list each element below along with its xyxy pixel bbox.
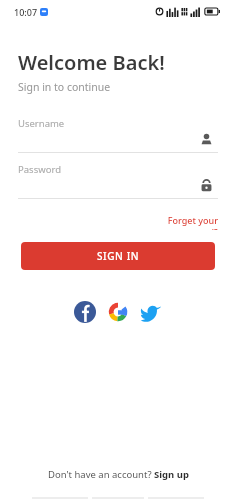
staticText: Welcome Back!: [18, 49, 165, 76]
button[interactable]: Password: [18, 163, 218, 199]
button[interactable]: Sign in with Google: [105, 299, 131, 325]
staticText: Forget your password?: [120, 214, 218, 230]
staticText: Sign up: [154, 468, 189, 481]
button[interactable]: Don't have an account?: [0, 466, 236, 482]
staticText: SIGN IN: [97, 249, 140, 263]
staticText: 10:07: [14, 6, 38, 18]
button[interactable]: Username: [18, 117, 218, 153]
staticText: Password: [18, 163, 61, 176]
staticText: Username: [18, 117, 65, 130]
button[interactable]: Forget your password?: [120, 214, 218, 230]
button[interactable]: Sign in with Facebook: [72, 299, 98, 325]
staticText: Sign in to continue: [18, 80, 111, 94]
button[interactable]: Sign in with Twitter: [138, 299, 164, 325]
staticText: Don't have an account?: [48, 468, 154, 481]
button[interactable]: SIGN IN: [21, 242, 215, 270]
